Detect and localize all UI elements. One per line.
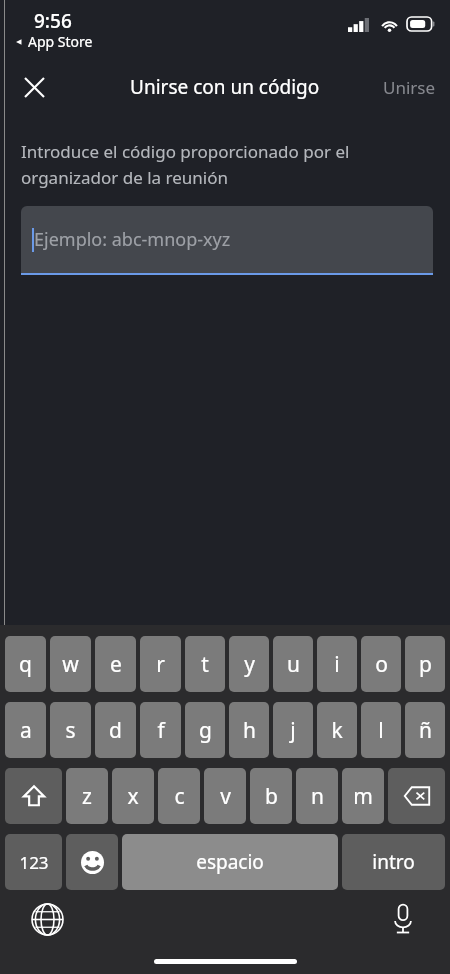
staticText: 123 [19, 851, 49, 874]
button[interactable]: l [361, 702, 401, 758]
staticText: u [287, 650, 300, 679]
button[interactable]: r [140, 636, 181, 692]
button[interactable]: z [66, 768, 108, 824]
button[interactable]: c [158, 768, 200, 824]
staticText: ñ [419, 716, 432, 745]
staticText: i [334, 650, 340, 679]
button[interactable]: Dictado [380, 896, 426, 942]
staticText: l [378, 716, 384, 745]
button[interactable]: g [185, 702, 225, 758]
button[interactable]: s [50, 702, 91, 758]
staticText: x [127, 782, 139, 811]
button[interactable]: Unirse [369, 68, 450, 107]
button[interactable]: k [317, 702, 357, 758]
button[interactable]: d [95, 702, 136, 758]
button[interactable]: y [229, 636, 269, 692]
button[interactable]: intro [342, 834, 445, 890]
button[interactable]: u [273, 636, 313, 692]
button[interactable]: espacio [122, 834, 338, 890]
staticText: r [156, 650, 165, 679]
button[interactable]: Cambiar idioma [24, 896, 70, 942]
staticText: w [62, 650, 79, 679]
button[interactable]: a [5, 702, 46, 758]
staticText: q [19, 650, 32, 679]
staticText: Ejemplo: abc-mnop-xyz [34, 227, 231, 252]
staticText: z [82, 782, 92, 811]
staticText: a [20, 716, 32, 745]
staticText: intro [372, 849, 415, 875]
staticText: k [331, 716, 343, 745]
button[interactable]: q [5, 636, 46, 692]
button[interactable]: Cerrar [12, 65, 56, 109]
button[interactable]: e [95, 636, 136, 692]
button[interactable]: h [229, 702, 269, 758]
staticText: e [110, 650, 122, 679]
staticText: m [353, 782, 373, 811]
staticText: f [157, 716, 165, 745]
button[interactable]: x [112, 768, 154, 824]
staticText: Unirse con un código [130, 74, 320, 100]
button[interactable]: i [317, 636, 357, 692]
button[interactable]: f [140, 702, 181, 758]
button[interactable]: Borrar [388, 768, 445, 824]
staticText: Introduce el código proporcionado por el… [21, 140, 350, 189]
staticText: espacio [196, 849, 264, 875]
staticText: p [419, 650, 432, 679]
button[interactable]: 123 [5, 834, 62, 890]
staticText: h [243, 716, 256, 745]
button[interactable]: p [405, 636, 445, 692]
button[interactable]: Emoji [66, 834, 118, 890]
staticText: y [244, 650, 255, 679]
button[interactable]: t [185, 636, 225, 692]
staticText: j [290, 716, 296, 745]
button[interactable]: b [250, 768, 292, 824]
staticText: o [375, 650, 388, 679]
staticText: 9:56 [34, 8, 72, 34]
staticText: g [199, 716, 212, 745]
staticText: s [65, 716, 76, 745]
button[interactable]: j [273, 702, 313, 758]
button[interactable]: Mayúsculas [5, 768, 62, 824]
button[interactable]: o [361, 636, 401, 692]
staticText: Unirse [383, 76, 436, 99]
staticText: c [174, 782, 185, 811]
button[interactable]: w [50, 636, 91, 692]
staticText: d [109, 716, 122, 745]
button[interactable]: v [204, 768, 246, 824]
staticText: b [265, 782, 278, 811]
button[interactable]: n [296, 768, 338, 824]
staticText: App Store [28, 32, 93, 51]
staticText: t [201, 650, 209, 679]
button[interactable]: ñ [405, 702, 445, 758]
button[interactable]: Ejemplo: abc-mnop-xyz [21, 206, 433, 273]
button[interactable]: m [342, 768, 384, 824]
staticText: n [311, 782, 324, 811]
staticText: v [220, 782, 231, 811]
